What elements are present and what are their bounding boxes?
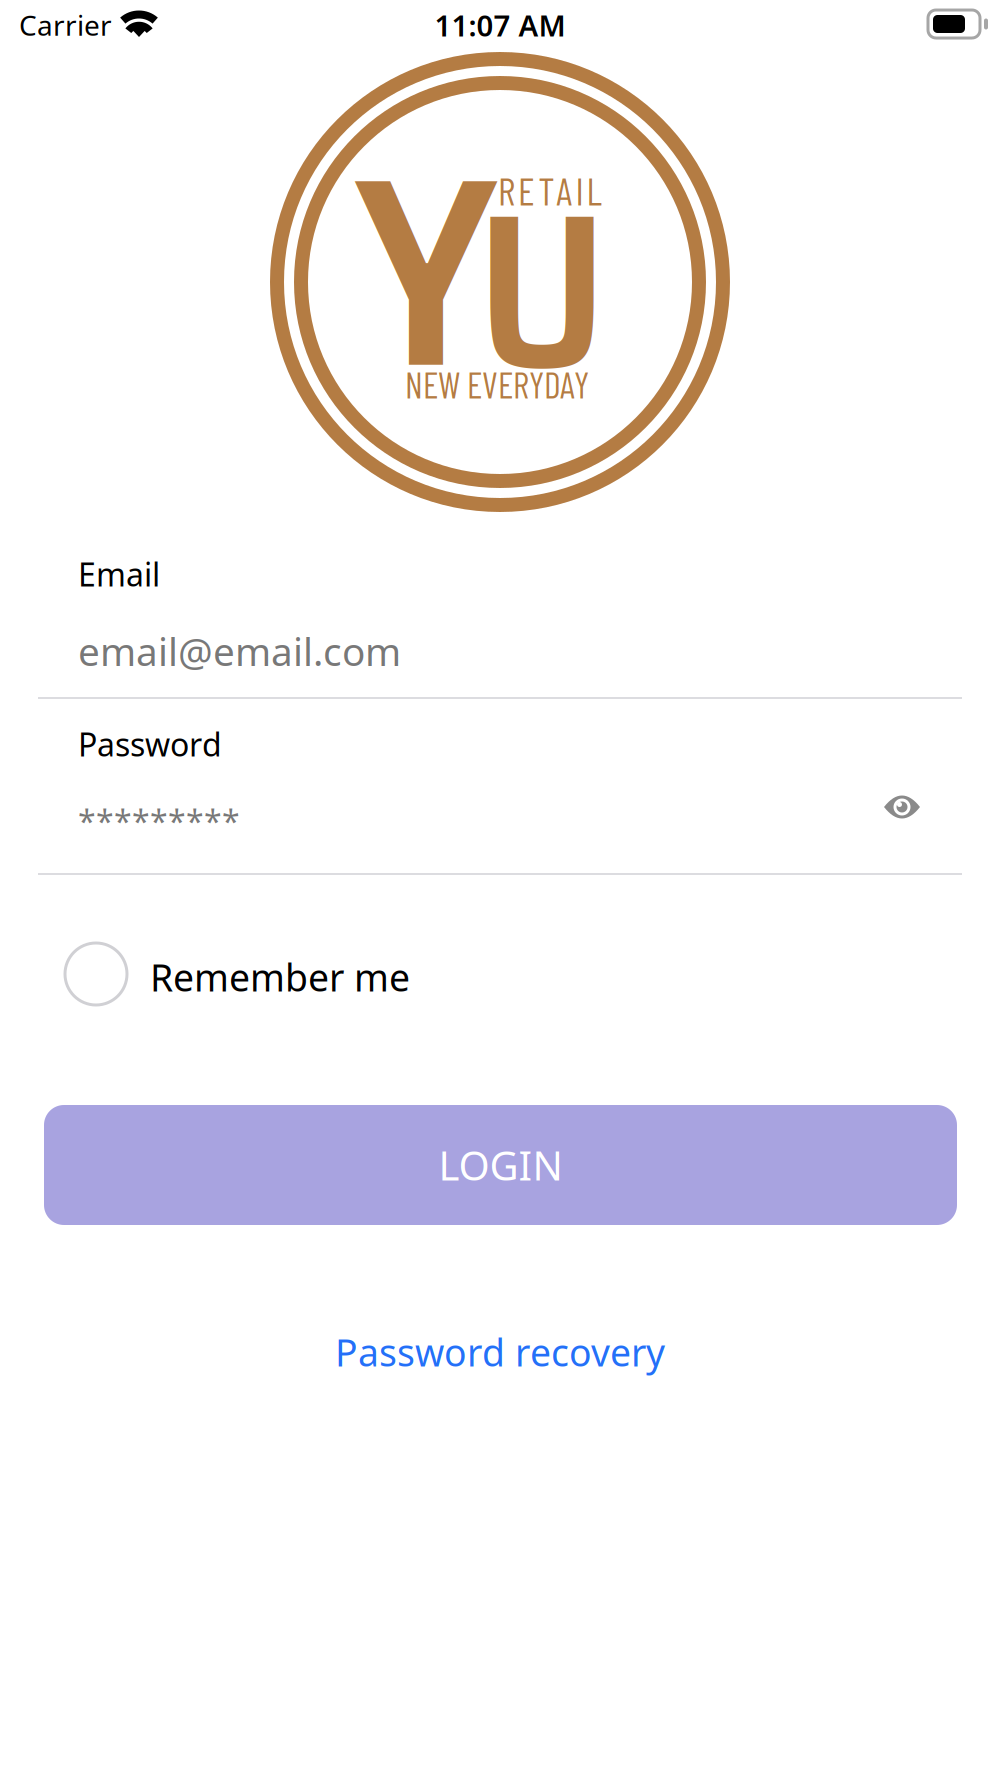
- button[interactable]: *********: [38, 788, 828, 866]
- staticText: Carrier: [19, 6, 112, 44]
- button[interactable]: LOGIN: [44, 1105, 957, 1225]
- staticText: Email: [78, 553, 160, 595]
- staticText: NEW EVERYDAY: [405, 362, 589, 406]
- staticText: Password recovery: [335, 1327, 665, 1377]
- staticText: Password: [78, 723, 222, 765]
- button[interactable]: email@email.com: [38, 618, 962, 696]
- button[interactable]: Password recovery: [250, 1324, 750, 1380]
- button[interactable]: Remember me: [62, 934, 422, 1010]
- staticText: *********: [78, 800, 240, 842]
- staticText: email@email.com: [78, 625, 401, 677]
- staticText: Y: [354, 62, 498, 482]
- staticText: 11:07 AM: [434, 5, 565, 44]
- staticText: Remember me: [150, 952, 410, 1002]
- button[interactable]: Show password: [864, 775, 940, 839]
- staticText: U: [476, 120, 608, 462]
- staticText: LOGIN: [438, 1138, 562, 1191]
- staticText: RETAIL: [498, 167, 601, 213]
